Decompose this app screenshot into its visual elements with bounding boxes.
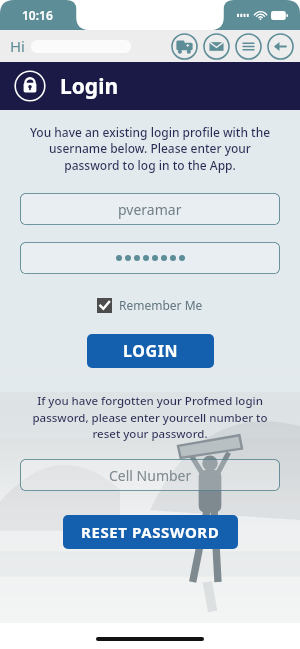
staticText: Remember Me xyxy=(119,297,203,313)
staticText: RESET PASSWORD xyxy=(81,522,220,542)
button[interactable]: Messages xyxy=(203,33,230,60)
staticText: Cell Number xyxy=(109,466,192,485)
button[interactable]: Menu xyxy=(235,33,262,60)
staticText: You have an existing login profile with … xyxy=(22,124,278,174)
button[interactable]: Remember Me xyxy=(93,293,207,317)
button[interactable]: Back xyxy=(267,33,294,60)
button[interactable]: RESET PASSWORD xyxy=(63,515,238,549)
staticText: pveramar xyxy=(118,200,182,219)
button[interactable]: Emergency assistance xyxy=(171,33,198,60)
staticText: Hi xyxy=(10,36,25,56)
staticText: If you have forgotten your Profmed login… xyxy=(26,393,274,441)
button[interactable]: LOGIN xyxy=(87,334,214,368)
staticText: 10:16 xyxy=(22,7,53,23)
button[interactable] xyxy=(20,242,280,274)
button[interactable]: pveramar xyxy=(20,193,280,225)
button[interactable]: Cell Number xyxy=(20,459,280,491)
staticText: LOGIN xyxy=(123,340,179,362)
staticText: Login xyxy=(60,72,119,101)
